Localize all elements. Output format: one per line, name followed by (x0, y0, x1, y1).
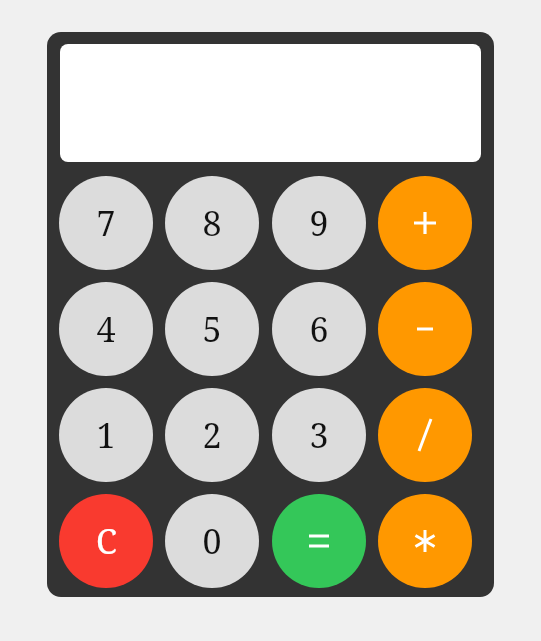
staticText: 9 (309, 200, 329, 246)
button[interactable]: Display (60, 44, 481, 162)
button[interactable]: C (59, 494, 153, 588)
staticText: 2 (202, 412, 222, 458)
button[interactable]: Multiply (378, 494, 472, 588)
button[interactable]: 3 (272, 388, 366, 482)
button[interactable]: Plus (378, 176, 472, 270)
staticText: 3 (309, 412, 329, 458)
staticText: 7 (96, 200, 116, 246)
button[interactable]: 1 (59, 388, 153, 482)
button[interactable]: 2 (165, 388, 259, 482)
button[interactable]: Divide (378, 388, 472, 482)
button[interactable]: 9 (272, 176, 366, 270)
button[interactable]: 4 (59, 282, 153, 376)
staticText: 4 (96, 306, 116, 352)
staticText: 5 (202, 306, 222, 352)
button[interactable]: 5 (165, 282, 259, 376)
staticText: C (96, 518, 117, 564)
button[interactable]: 7 (59, 176, 153, 270)
button[interactable]: 8 (165, 176, 259, 270)
staticText: 6 (309, 306, 329, 352)
button[interactable]: 6 (272, 282, 366, 376)
staticText: 0 (202, 518, 222, 564)
button[interactable]: Minus (378, 282, 472, 376)
staticText: 1 (96, 412, 116, 458)
staticText: 8 (202, 200, 222, 246)
button[interactable]: 0 (165, 494, 259, 588)
button[interactable]: Equals (272, 494, 366, 588)
